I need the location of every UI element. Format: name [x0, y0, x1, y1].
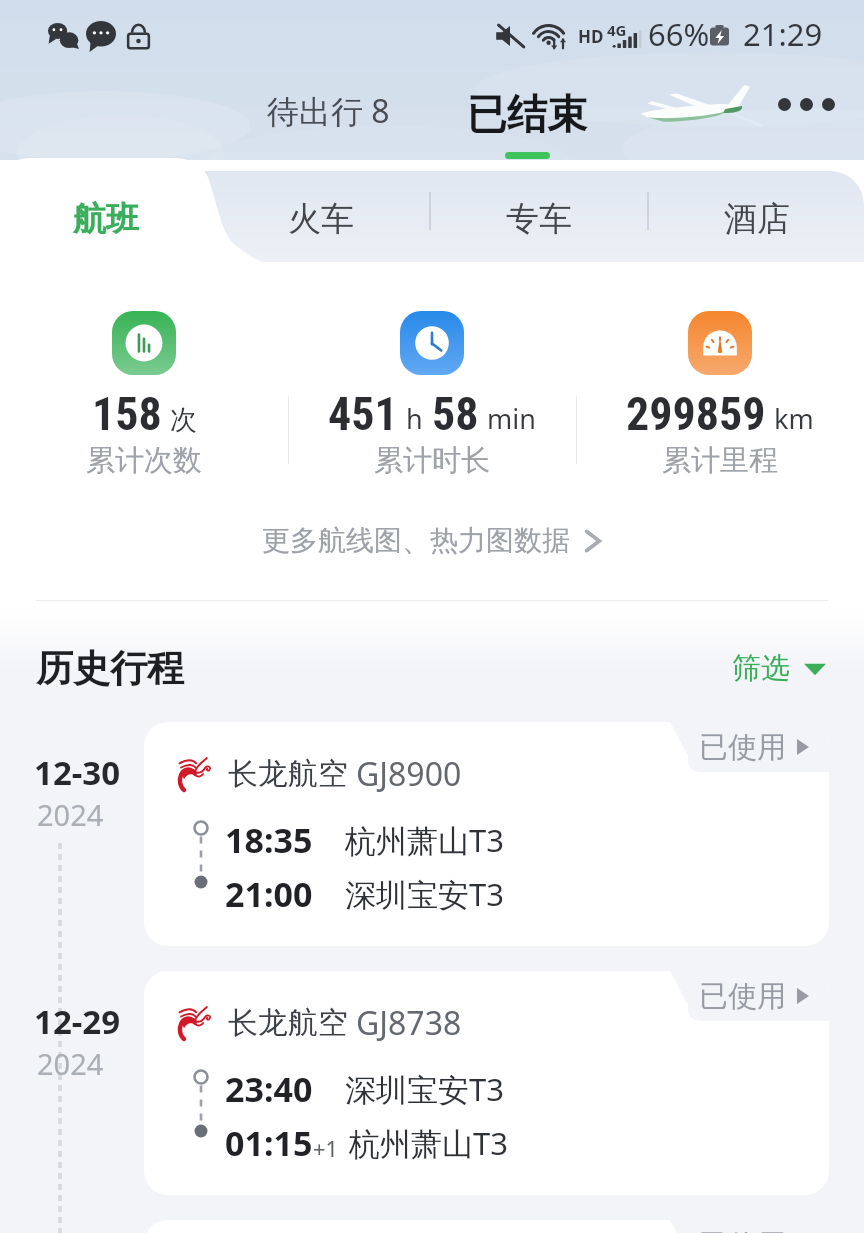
button[interactable]: 航班	[0, 160, 212, 262]
staticText: 18:35	[225, 817, 313, 863]
staticText: +1	[313, 1133, 339, 1163]
staticText: 历史行程	[36, 645, 184, 692]
button[interactable]: 待出行 8	[259, 81, 398, 141]
staticText: 已使用	[699, 1227, 786, 1233]
staticText: 深圳宝安T3	[345, 1068, 504, 1110]
staticText: 299859	[626, 387, 766, 441]
staticText: 已使用	[699, 978, 786, 1015]
staticText: min	[487, 400, 536, 437]
staticText: 累计时长	[374, 442, 490, 479]
staticText: 已使用	[699, 729, 786, 766]
button[interactable]: 火车	[212, 160, 429, 262]
button[interactable]: 筛选	[724, 642, 834, 695]
staticText: 4G	[607, 20, 627, 40]
button[interactable]: 已使用	[144, 1220, 829, 1233]
staticText: km	[774, 400, 814, 437]
staticText: 杭州萧山T3	[349, 1122, 508, 1164]
staticText: 12-30	[34, 750, 121, 795]
staticText: 待出行 8	[267, 89, 390, 133]
staticText: GJ8738	[356, 1001, 462, 1045]
staticText: 次	[170, 403, 197, 437]
button[interactable]: 专车	[431, 160, 647, 262]
staticText: 专车	[506, 198, 572, 240]
staticText: 累计次数	[86, 442, 202, 479]
staticText: 451	[328, 387, 398, 441]
staticText: 21:00	[225, 871, 313, 917]
button[interactable]: 158	[0, 311, 288, 479]
staticText: HD	[578, 25, 604, 48]
staticText: 长龙航空	[228, 755, 348, 793]
staticText: 深圳宝安T3	[345, 873, 504, 915]
staticText: 21:29	[743, 13, 823, 55]
button[interactable]: 已使用	[144, 722, 829, 946]
staticText: 火车	[288, 198, 354, 240]
staticText: 23:40	[225, 1066, 313, 1112]
staticText: 累计里程	[662, 442, 778, 479]
staticText: 筛选	[732, 650, 790, 687]
staticText: 58	[432, 387, 479, 441]
staticText: 已结束	[467, 89, 587, 139]
button[interactable]: 299859	[576, 311, 864, 479]
button[interactable]: 451	[288, 311, 576, 479]
staticText: GJ8900	[356, 752, 462, 796]
staticText: h	[406, 400, 423, 437]
staticText: 12-29	[34, 999, 121, 1044]
staticText: 2024	[37, 795, 104, 834]
button[interactable]: 已结束	[461, 89, 593, 159]
staticText: 2024	[37, 1044, 104, 1083]
staticText: 01:15	[225, 1120, 313, 1166]
button[interactable]: 更多航线图、热力图数据	[252, 517, 612, 564]
staticText: 更多航线图、热力图数据	[262, 523, 570, 558]
staticText: 158	[92, 387, 162, 441]
staticText: 66%	[648, 13, 710, 55]
staticText: 酒店	[724, 198, 790, 240]
staticText: 长龙航空	[228, 1004, 348, 1042]
button[interactable]: 酒店	[649, 160, 864, 262]
staticText: 航班	[73, 198, 139, 240]
staticText: 杭州萧山T3	[345, 819, 504, 861]
button[interactable]: More options	[770, 90, 843, 119]
button[interactable]: 已使用	[144, 971, 829, 1195]
